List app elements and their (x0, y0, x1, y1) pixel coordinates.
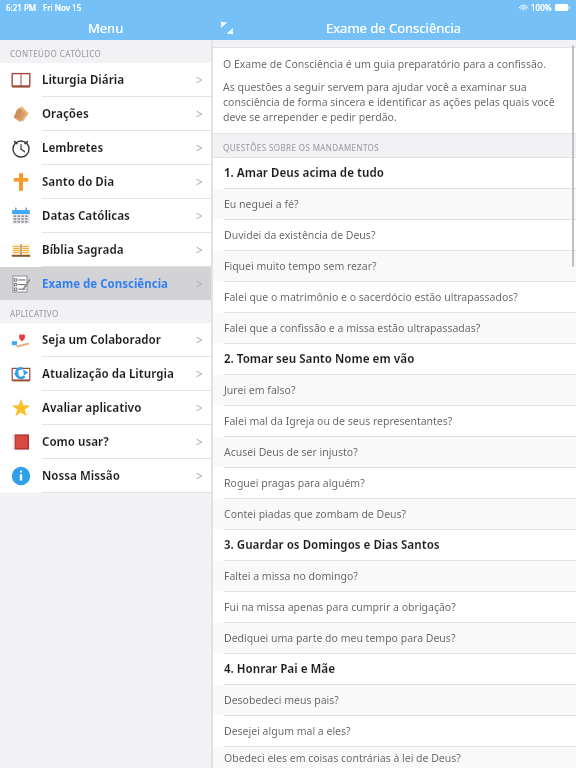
button[interactable]: Falei que o matrimônio e o sacerdócio es… (213, 282, 576, 312)
staticText: Desejei algum mal a eles? (224, 724, 351, 738)
staticText: APLICATIVO (10, 308, 59, 319)
button[interactable]: Atualização da Liturgia (0, 357, 211, 390)
button[interactable]: 1. Amar Deus acima de tudo (213, 158, 576, 188)
button[interactable]: Orações (0, 97, 211, 130)
staticText: Obedeci eles em coisas contrárias à lei … (224, 751, 461, 765)
button[interactable]: Desobedeci meus pais? (213, 685, 576, 715)
staticText: QUESTÕES SOBRE OS MANDAMENTOS (223, 142, 380, 153)
button[interactable]: 3. Guardar os Domingos e Dias Santos (213, 530, 576, 560)
staticText: Falei que a confissão e a missa estão ul… (224, 321, 481, 335)
staticText: Exame de Consciência (42, 276, 168, 292)
staticText: Datas Católicas (42, 208, 130, 224)
staticText: Liturgia Diária (42, 72, 125, 88)
staticText: Falei que o matrimônio e o sacerdócio es… (224, 290, 518, 304)
staticText: Eu neguei a fé? (224, 197, 299, 211)
button[interactable]: Avaliar aplicativo (0, 391, 211, 424)
button[interactable]: Faltei a missa no domingo? (213, 561, 576, 591)
button[interactable]: Acusei Deus de ser injusto? (213, 437, 576, 467)
button[interactable]: Contei piadas que zombam de Deus? (213, 499, 576, 529)
button[interactable]: Santo do Dia (0, 165, 211, 198)
button[interactable]: Expandir (215, 16, 239, 40)
staticText: 4. Honrar Pai e Mãe (224, 661, 336, 677)
staticText: Seja um Colaborador (42, 332, 161, 348)
staticText: 100% (531, 2, 552, 13)
button[interactable]: Seja um Colaborador (0, 323, 211, 356)
staticText: Falei mal da Igreja ou de seus represent… (224, 414, 453, 428)
staticText: As questões a seguir servem para ajudar … (223, 80, 564, 124)
staticText: Bíblia Sagrada (42, 242, 124, 258)
button[interactable]: Liturgia Diária (0, 63, 211, 96)
button[interactable]: Fiquei muito tempo sem rezar? (213, 251, 576, 281)
button[interactable]: Como usar? (0, 425, 211, 458)
button[interactable]: Eu neguei a fé? (213, 189, 576, 219)
staticText: Nossa Missão (42, 468, 120, 484)
staticText: Duvidei da existência de Deus? (224, 228, 376, 242)
button[interactable]: Nossa Missão (0, 459, 211, 492)
button[interactable]: Falei que a confissão e a missa estão ul… (213, 313, 576, 343)
staticText: Acusei Deus de ser injusto? (224, 445, 358, 459)
button[interactable]: 4. Honrar Pai e Mãe (213, 654, 576, 684)
button[interactable]: Desejei algum mal a eles? (213, 716, 576, 746)
staticText: 3. Guardar os Domingos e Dias Santos (224, 537, 440, 553)
staticText: 1. Amar Deus acima de tudo (224, 165, 384, 181)
button[interactable]: Roguei pragas para alguém? (213, 468, 576, 498)
staticText: Contei piadas que zombam de Deus? (224, 507, 407, 521)
staticText: Exame de Consciência (326, 19, 462, 37)
button[interactable]: Fui na missa apenas para cumprir a obrig… (213, 592, 576, 622)
staticText: Faltei a missa no domingo? (224, 569, 358, 583)
button[interactable]: Jurei em falso? (213, 375, 576, 405)
button[interactable]: Lembretes (0, 131, 211, 164)
staticText: Avaliar aplicativo (42, 400, 142, 416)
button[interactable]: Datas Católicas (0, 199, 211, 232)
staticText: Fri Nov 15 (43, 2, 82, 13)
staticText: 2. Tomar seu Santo Nome em vão (224, 351, 415, 367)
button[interactable]: Falei mal da Igreja ou de seus represent… (213, 406, 576, 436)
staticText: Jurei em falso? (224, 383, 296, 397)
staticText: Desobedeci meus pais? (224, 693, 339, 707)
staticText: 6:21 PM (6, 2, 37, 13)
staticText: Roguei pragas para alguém? (224, 476, 365, 490)
button[interactable]: Exame de Consciência (0, 267, 211, 300)
staticText: Santo do Dia (42, 174, 115, 190)
staticText: Orações (42, 106, 89, 122)
staticText: Fui na missa apenas para cumprir a obrig… (224, 600, 456, 614)
staticText: CONTEÚDO CATÓLICO (10, 48, 102, 59)
staticText: Como usar? (42, 434, 109, 450)
staticText: Menu (88, 19, 124, 37)
button[interactable]: Menu (80, 17, 132, 39)
staticText: Atualização da Liturgia (42, 366, 174, 382)
staticText: Dediquei uma parte do meu tempo para Deu… (224, 631, 456, 645)
staticText: O Exame de Consciência é um guia prepara… (223, 57, 546, 71)
button[interactable]: Dediquei uma parte do meu tempo para Deu… (213, 623, 576, 653)
button[interactable]: Obedeci eles em coisas contrárias à lei … (213, 747, 576, 768)
staticText: Lembretes (42, 140, 104, 156)
button[interactable]: Bíblia Sagrada (0, 233, 211, 266)
button[interactable]: Duvidei da existência de Deus? (213, 220, 576, 250)
button[interactable]: 2. Tomar seu Santo Nome em vão (213, 344, 576, 374)
staticText: Fiquei muito tempo sem rezar? (224, 259, 377, 273)
